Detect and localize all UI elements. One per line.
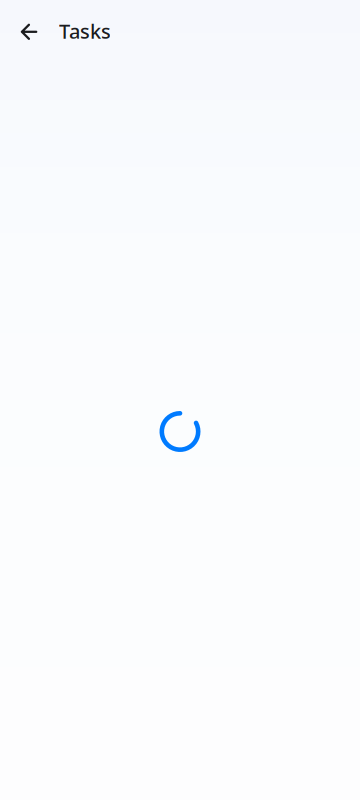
staticText: Tasks — [59, 18, 111, 44]
button[interactable]: Back — [13, 16, 45, 48]
